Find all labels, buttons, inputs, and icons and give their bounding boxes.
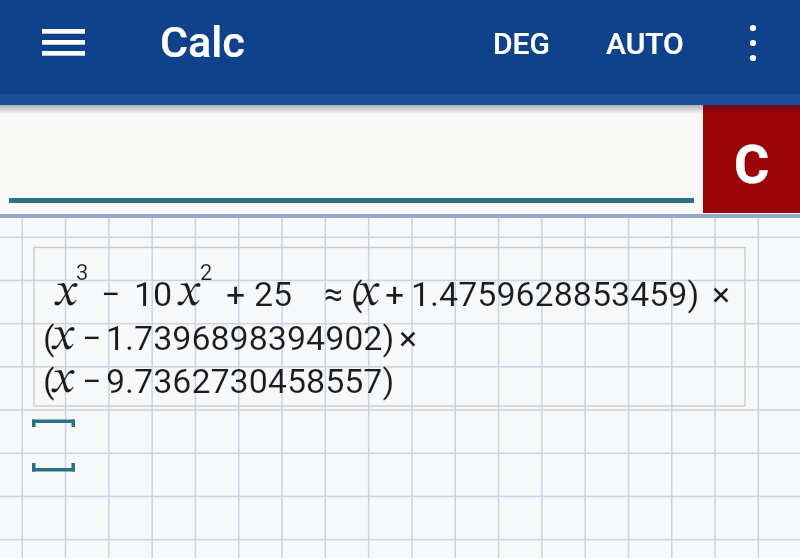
staticText: − (82, 361, 102, 401)
staticText: 25 (254, 274, 293, 314)
staticText: x (56, 271, 77, 316)
staticText: − (101, 274, 121, 314)
button[interactable] (0, 105, 703, 214)
staticText: 3 (76, 260, 89, 286)
staticText: AUTO (606, 26, 684, 61)
staticText: ( (351, 274, 363, 314)
button[interactable]: AUTO (596, 16, 694, 70)
staticText: 9.7362730458557) (106, 361, 395, 401)
staticText: ≈ (324, 274, 344, 314)
button[interactable] (726, 10, 780, 76)
staticText: ( (43, 318, 55, 358)
staticText: 1.7396898394902) (106, 318, 395, 358)
staticText: x (53, 358, 74, 403)
staticText: ( (43, 361, 55, 401)
staticText: Calc (160, 17, 245, 67)
button[interactable] (24, 12, 104, 74)
button[interactable]: C (703, 105, 800, 213)
staticText: + (385, 274, 405, 314)
staticText: × (399, 318, 418, 358)
staticText: C (734, 133, 770, 196)
staticText: − (82, 318, 102, 358)
staticText: + (226, 274, 246, 314)
button[interactable]: DEG (478, 16, 564, 70)
staticText: 1.4759628853459) (411, 274, 700, 314)
staticText: 2 (200, 260, 213, 286)
staticText: × (712, 274, 731, 314)
staticText: x (179, 271, 200, 316)
staticText: 10 (134, 274, 173, 314)
staticText: x (358, 271, 379, 316)
staticText: DEG (493, 26, 550, 61)
staticText: x (53, 315, 74, 360)
